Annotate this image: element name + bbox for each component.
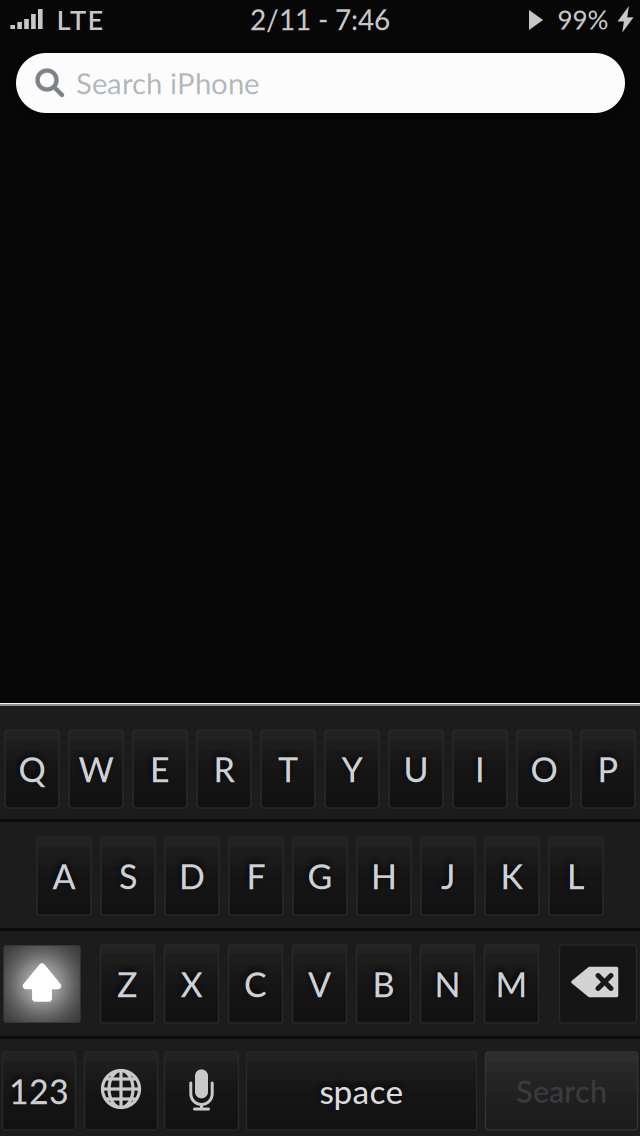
staticText: 123 [9,1071,69,1111]
staticText: A [52,856,75,896]
staticText: F [246,856,265,896]
button[interactable]: J [421,837,475,915]
staticText: R [213,749,234,789]
staticText: S [119,856,137,896]
button[interactable]: A [37,837,91,915]
staticText: G [307,856,332,896]
button[interactable]: R [197,730,251,808]
staticText: T [278,749,298,789]
button[interactable]: Y [325,730,379,808]
staticText: L [567,856,585,896]
staticText: P [597,749,618,789]
staticText: V [308,964,331,1004]
staticText: Q [18,749,45,789]
staticText: X [180,964,202,1004]
button[interactable]: U [389,730,443,808]
staticText: M [495,964,527,1004]
button[interactable]: Search [485,1052,637,1130]
staticText: J [441,856,455,896]
staticText: H [371,856,397,896]
staticText: Z [117,964,138,1004]
button[interactable]: 123 [2,1052,75,1130]
staticText: E [150,749,170,789]
staticText: B [372,964,394,1004]
staticText: Search [516,1073,607,1109]
staticText: W [78,749,113,789]
button[interactable]: Z [100,945,154,1023]
button[interactable]: E [133,730,187,808]
staticText: Search iPhone [76,65,259,101]
button[interactable]: G [293,837,347,915]
button[interactable]: Shift [3,945,80,1023]
button[interactable]: V [292,945,346,1023]
button[interactable]: D [165,837,219,915]
button[interactable]: space [246,1052,476,1130]
staticText: N [434,964,460,1004]
button[interactable]: W [69,730,123,808]
button[interactable]: F [229,837,283,915]
staticText: O [530,749,557,789]
button[interactable]: Next keyboard [84,1052,157,1130]
button[interactable]: H [357,837,411,915]
staticText: D [179,856,205,896]
button[interactable]: O [517,730,571,808]
staticText: LTE [56,3,104,36]
button[interactable]: Q [5,730,59,808]
staticText: space [319,1071,403,1111]
button[interactable]: K [485,837,539,915]
staticText: C [244,964,267,1004]
button[interactable]: C [228,945,282,1023]
button[interactable]: I [453,730,507,808]
button[interactable]: P [581,730,635,808]
button[interactable]: X [164,945,218,1023]
staticText: U [403,749,428,789]
button[interactable]: T [261,730,315,808]
button[interactable]: N [420,945,474,1023]
button[interactable]: B [356,945,410,1023]
staticText: Y [341,749,362,789]
button[interactable]: Dictate [164,1052,238,1130]
button[interactable]: S [101,837,155,915]
staticText: 99% [557,4,608,35]
staticText: K [500,856,523,896]
staticText: I [475,749,485,789]
button[interactable]: Search iPhone [16,53,625,113]
button[interactable]: L [549,837,603,915]
button[interactable]: M [484,945,538,1023]
button[interactable]: Delete [559,945,636,1023]
staticText: 2/11 - 7:46 [250,3,390,36]
